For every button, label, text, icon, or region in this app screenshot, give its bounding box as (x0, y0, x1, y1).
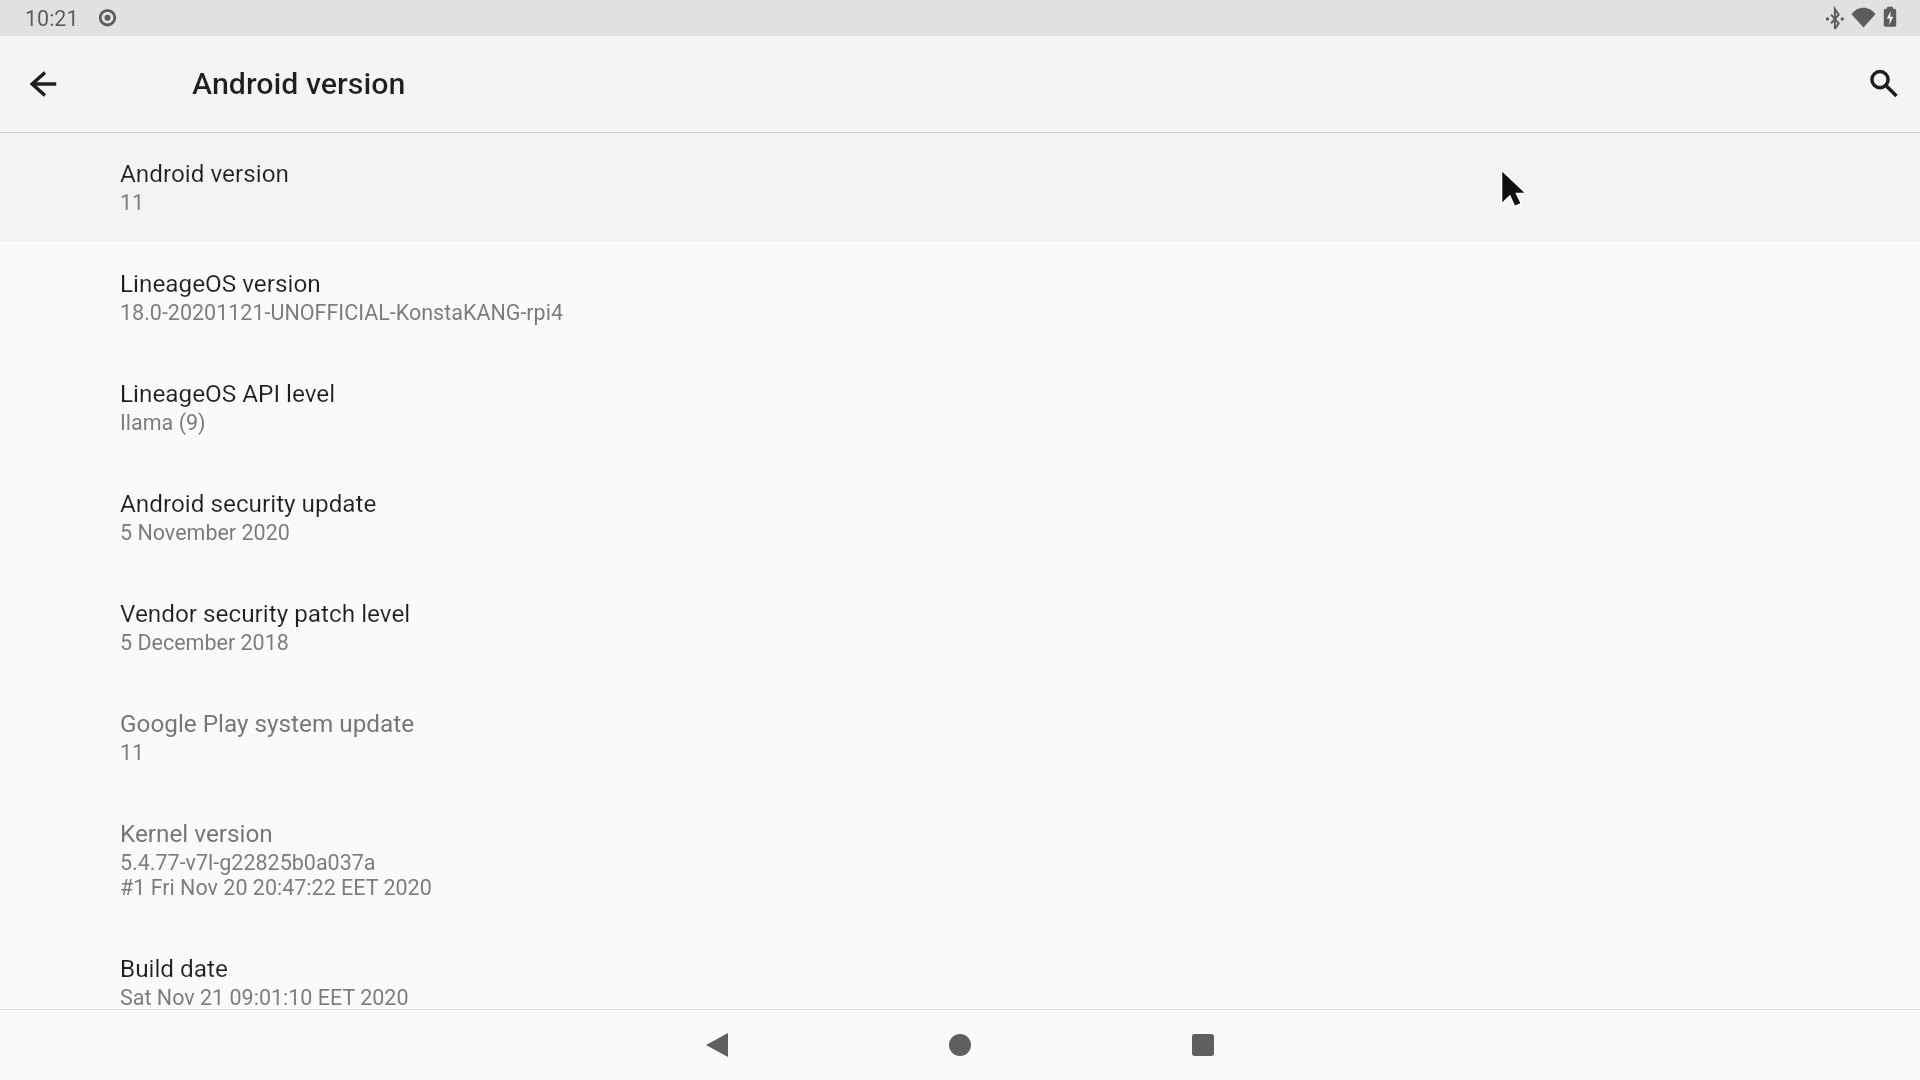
staticText: Sat Nov 21 09:01:10 EET 2020 (120, 985, 409, 1008)
button[interactable]: Vendor security patch level (0, 572, 1920, 682)
staticText: 11 (120, 740, 145, 765)
button[interactable]: LineageOS version (0, 242, 1920, 352)
staticText: LineageOS version (120, 269, 321, 297)
button[interactable]: Back (657, 1009, 777, 1080)
button[interactable]: LineageOS API level (0, 352, 1920, 462)
staticText: Android security update (120, 489, 377, 517)
staticText: 18.0-20201121-UNOFFICIAL-KonstaKANG-rpi4 (120, 300, 564, 325)
staticText: Build date (120, 954, 228, 982)
button[interactable]: Google Play system update (0, 682, 1920, 792)
staticText: 5 December 2018 (120, 630, 289, 655)
staticText: Android version (192, 66, 406, 102)
button[interactable]: Navigate up (8, 48, 80, 120)
staticText: Ilama (9) (120, 410, 206, 435)
button[interactable]: Search (1848, 48, 1920, 120)
staticText: Vendor security patch level (120, 599, 411, 627)
button[interactable]: Android security update (0, 462, 1920, 572)
staticText: LineageOS API level (120, 379, 336, 407)
button[interactable]: Home (900, 1009, 1020, 1080)
button[interactable]: Kernel version (0, 792, 1920, 927)
staticText: #1 Fri Nov 20 20:47:22 EET 2020 (120, 875, 432, 900)
staticText: 10:21 (25, 6, 79, 31)
staticText: Kernel version (120, 819, 273, 847)
button[interactable]: Build date (0, 927, 1920, 1008)
staticText: Android version (120, 159, 289, 187)
button[interactable]: Android version (0, 132, 1920, 242)
staticText: 11 (120, 190, 145, 215)
staticText: 5 November 2020 (120, 520, 290, 545)
button[interactable]: Recent apps (1143, 1009, 1263, 1080)
staticText: Google Play system update (120, 709, 415, 737)
staticText: 5.4.77-v7l-g22825b0a037a (120, 850, 376, 875)
